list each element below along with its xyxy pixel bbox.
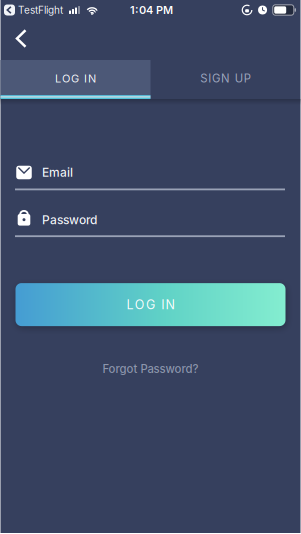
staticText: O bbox=[135, 297, 145, 312]
button[interactable]: L bbox=[15, 283, 285, 326]
staticText: U bbox=[235, 72, 243, 85]
button[interactable]: L bbox=[0, 60, 150, 99]
staticText: L bbox=[55, 72, 61, 85]
staticText: G bbox=[146, 297, 155, 312]
staticText: S bbox=[200, 72, 207, 85]
staticText: N bbox=[165, 297, 174, 312]
button[interactable]: Back bbox=[0, 21, 25, 59]
staticText: G bbox=[71, 72, 79, 85]
staticText: G bbox=[212, 72, 220, 85]
staticText: TestFlight bbox=[18, 4, 63, 16]
staticText: Email bbox=[42, 165, 73, 180]
staticText: N bbox=[88, 72, 96, 85]
button[interactable]: S bbox=[150, 60, 300, 99]
button[interactable]: Forgot Password? bbox=[102, 362, 198, 375]
staticText: I bbox=[161, 297, 164, 312]
staticText: 1:04 PM bbox=[130, 3, 173, 16]
staticText: Forgot Password? bbox=[102, 362, 198, 375]
staticText: I bbox=[208, 72, 211, 85]
staticText: Password bbox=[42, 213, 97, 227]
staticText: O bbox=[62, 72, 70, 85]
staticText: L bbox=[126, 297, 133, 312]
staticText: N bbox=[221, 72, 230, 85]
staticText: I bbox=[84, 72, 87, 85]
staticText: P bbox=[244, 72, 251, 85]
